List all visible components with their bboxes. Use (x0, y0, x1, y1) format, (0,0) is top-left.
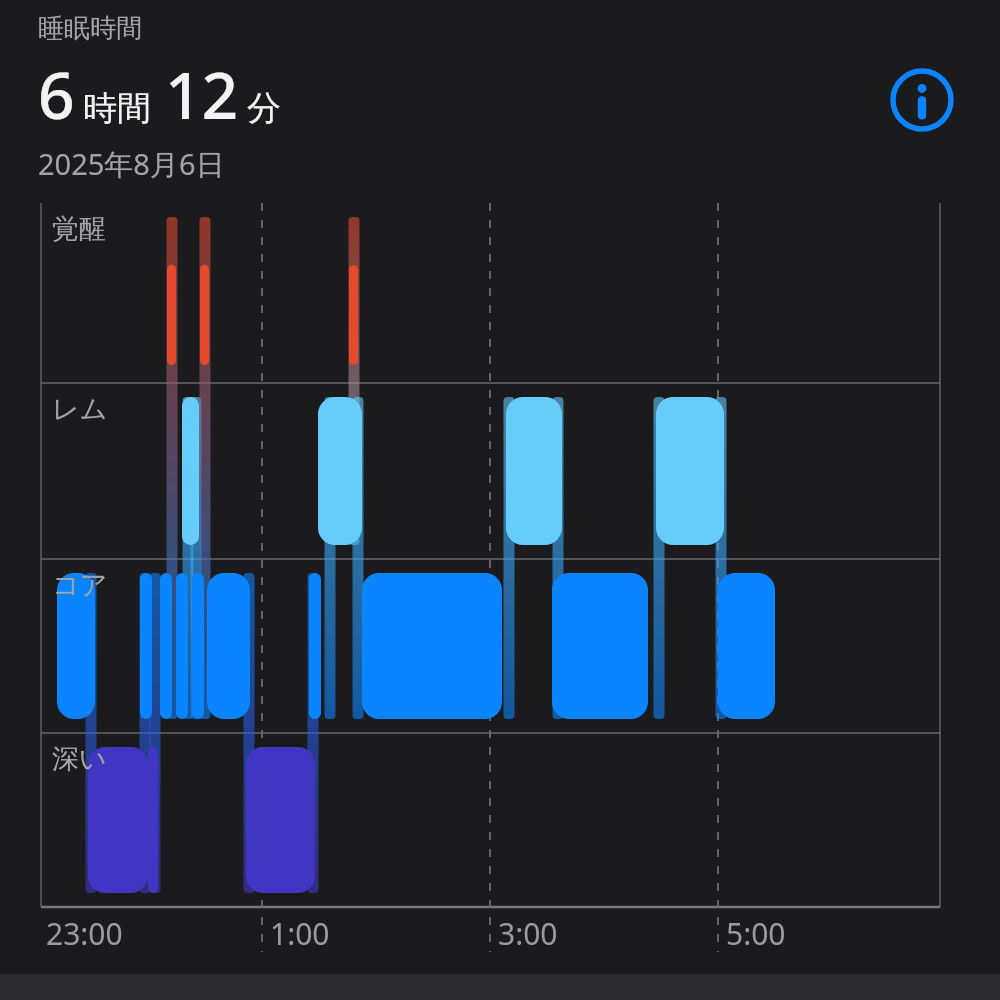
staticText: 睡眠時間 (38, 12, 142, 45)
staticText: 分 (247, 87, 281, 130)
staticText: 時間 (83, 87, 151, 130)
staticText: レム (52, 392, 108, 426)
staticText: 3:00 (498, 913, 558, 954)
button[interactable]: 詳しい情報 (888, 66, 956, 134)
staticText: 5:00 (726, 913, 786, 954)
staticText: 23:00 (46, 913, 123, 954)
staticText: 12 (165, 51, 239, 138)
staticText: 1:00 (270, 913, 330, 954)
staticText: 2025年8月6日 (38, 144, 225, 184)
staticText: 6 (38, 51, 75, 138)
staticText: 深い (52, 742, 107, 776)
staticText: コア (52, 568, 108, 602)
staticText: 覚醒 (52, 212, 106, 246)
